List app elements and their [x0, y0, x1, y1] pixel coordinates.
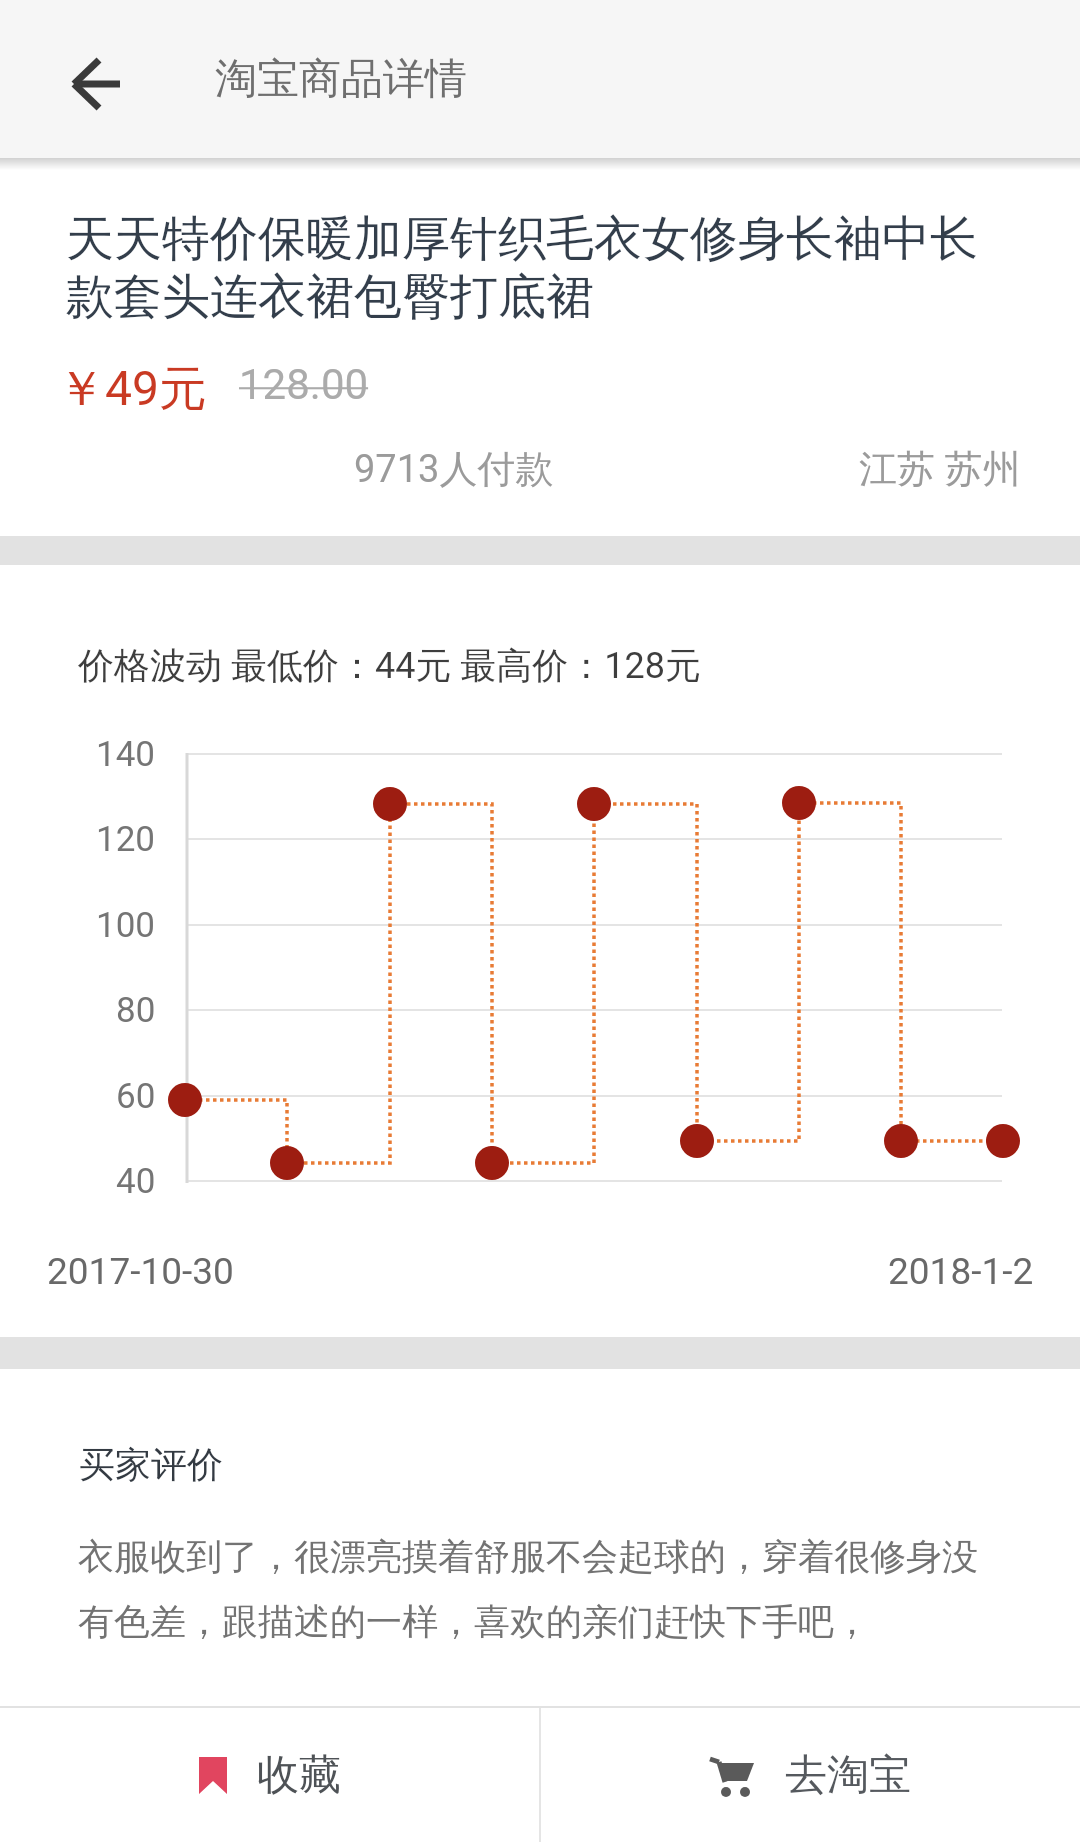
staticText: 60	[116, 1076, 156, 1117]
staticText: 140	[96, 734, 156, 775]
button[interactable]	[49, 36, 145, 132]
staticText: 2018-1-2	[888, 1250, 1034, 1293]
staticText: 2017-10-30	[47, 1250, 234, 1293]
staticText: 120	[96, 819, 156, 860]
button[interactable]: 去淘宝	[541, 1708, 1080, 1842]
staticText: 收藏	[257, 1749, 341, 1802]
button[interactable]: 收藏	[0, 1708, 539, 1842]
staticText: 江苏 苏州	[859, 445, 1021, 493]
staticText: 100	[96, 905, 156, 946]
staticText: 9713人付款	[354, 445, 554, 493]
staticText: 价格波动 最低价：44元 最高价：128元	[78, 643, 702, 688]
staticText: 天天特价保暖加厚针织毛衣女修身长袖中长 款套头连衣裙包臀打底裙	[66, 209, 978, 328]
staticText: 买家评价	[79, 1442, 223, 1487]
staticText: 去淘宝	[785, 1749, 911, 1802]
staticText: 衣服收到了，很漂亮摸着舒服不会起球的，穿着很修身没 有色差，跟描述的一样，喜欢的…	[78, 1534, 978, 1644]
staticText: 40	[116, 1161, 156, 1202]
staticText: ￥49元	[57, 359, 207, 419]
staticText: 80	[116, 990, 156, 1031]
staticText: 淘宝商品详情	[215, 53, 467, 106]
staticText: 128.00	[239, 360, 369, 409]
